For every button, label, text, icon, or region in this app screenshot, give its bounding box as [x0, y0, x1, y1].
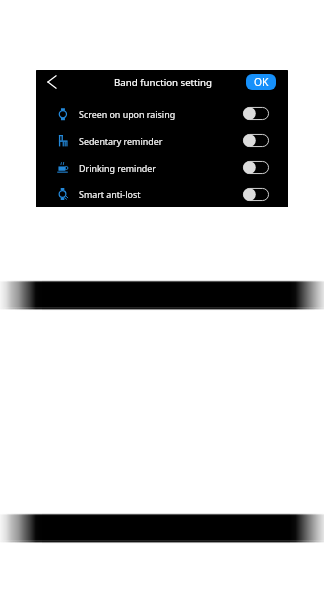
button[interactable]: Toggle Smart anti-lost	[243, 188, 269, 201]
staticText: Sedentary reminder	[79, 135, 163, 147]
button[interactable]: OK	[246, 74, 276, 90]
button[interactable]: Drinking reminder	[36, 154, 288, 181]
button[interactable]: Toggle Sedentary reminder	[243, 134, 269, 147]
button[interactable]: Screen on upon raising	[36, 100, 288, 127]
button[interactable]: Back	[42, 72, 62, 92]
staticText: OK	[254, 75, 269, 89]
button[interactable]: Toggle Drinking reminder	[243, 161, 269, 174]
staticText: Smart anti-lost	[79, 188, 141, 200]
button[interactable]: Toggle Screen on upon raising	[243, 107, 269, 120]
staticText: Band function setting	[114, 76, 213, 89]
button[interactable]: Smart anti-lost	[36, 181, 288, 207]
staticText: Screen on upon raising	[79, 108, 176, 120]
button[interactable]: Sedentary reminder	[36, 127, 288, 154]
staticText: Drinking reminder	[79, 162, 157, 174]
